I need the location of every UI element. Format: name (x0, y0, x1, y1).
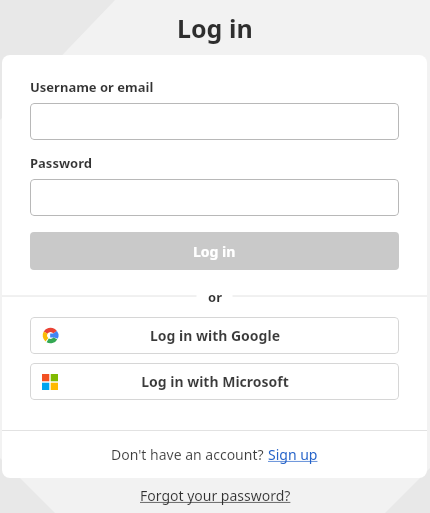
staticText: or (208, 288, 222, 304)
staticText: Sign up (268, 445, 318, 464)
staticText: Forgot your password? (140, 486, 291, 505)
button[interactable] (30, 179, 399, 216)
button[interactable]: Forgot your password? (134, 480, 297, 511)
staticText: Log in (177, 11, 253, 45)
button[interactable]: Log in (30, 232, 399, 270)
staticText: Password (30, 154, 92, 172)
staticText: Username or email (30, 78, 154, 96)
staticText: Don't have an account? (111, 445, 268, 464)
staticText: Log in (193, 242, 236, 261)
button[interactable]: Log in with Microsoft (30, 363, 399, 400)
staticText: Log in with Google (150, 326, 280, 345)
staticText: Log in with Microsoft (141, 372, 289, 391)
button[interactable]: Sign up (268, 445, 318, 464)
button[interactable] (30, 103, 399, 140)
button[interactable]: Log in with Google (30, 317, 399, 354)
